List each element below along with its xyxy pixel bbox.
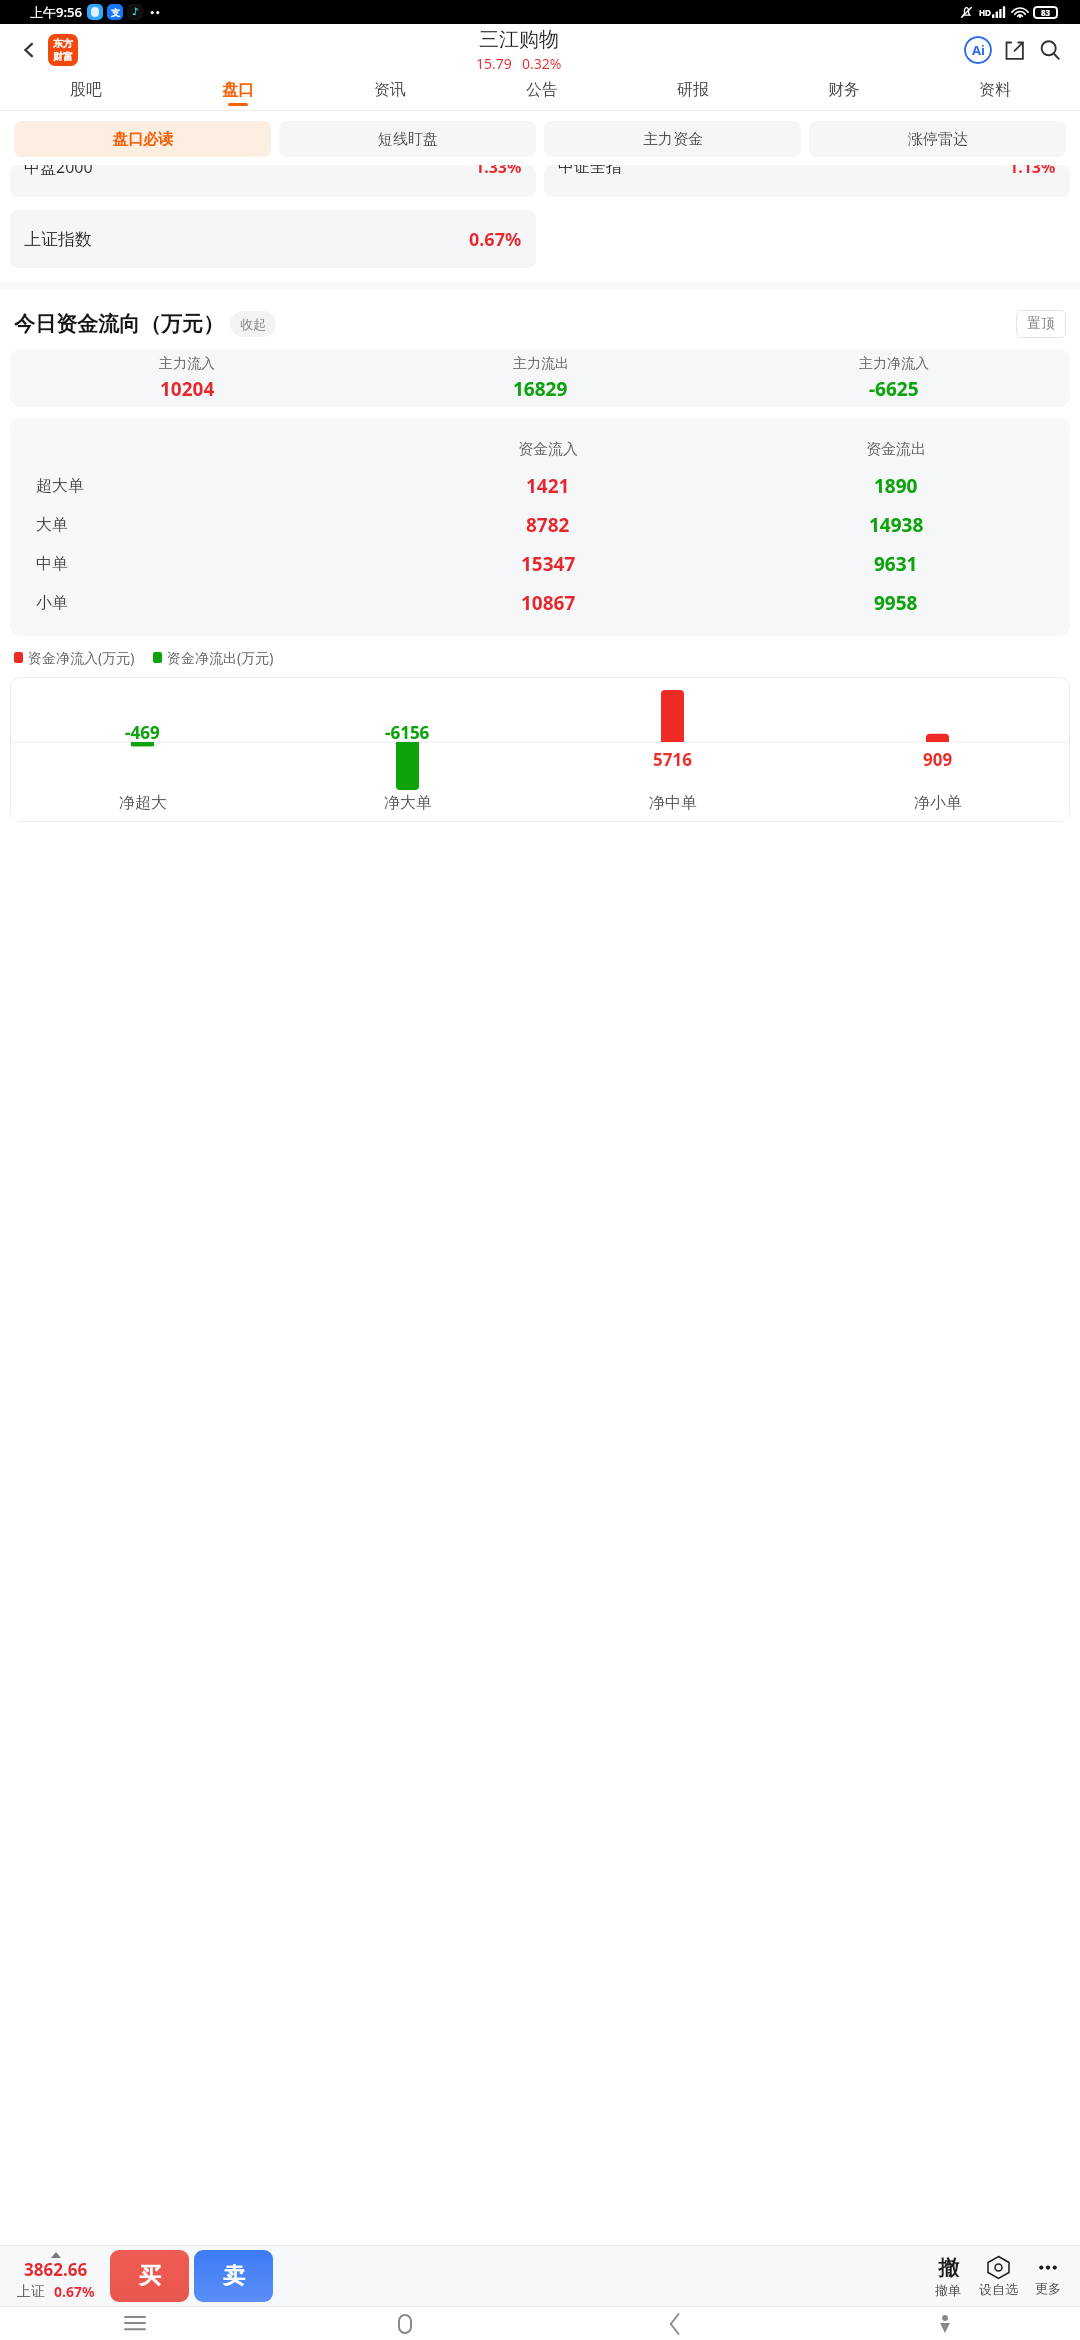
button[interactable]: 设自选 bbox=[972, 2255, 1024, 2297]
button[interactable]: 研报 bbox=[617, 76, 768, 110]
staticText: Ai bbox=[972, 41, 985, 59]
button[interactable]: 置顶 bbox=[1027, 310, 1055, 338]
staticText: 1890 bbox=[874, 473, 918, 499]
staticText: 5716 bbox=[653, 748, 692, 771]
button[interactable]: Search bbox=[1032, 32, 1068, 68]
staticText: 10867 bbox=[521, 590, 576, 616]
staticText: 0.32% bbox=[522, 54, 562, 73]
staticText: 大单 bbox=[36, 515, 68, 535]
staticText: 主力流入 bbox=[159, 355, 215, 373]
button[interactable]: 中盘2000 bbox=[10, 165, 536, 197]
staticText: 撤单 bbox=[935, 2282, 961, 2298]
staticText: -469 bbox=[125, 721, 160, 744]
button[interactable]: 主力资金 bbox=[544, 121, 801, 157]
staticText: 83 bbox=[1041, 7, 1051, 18]
staticText: 中盘2000 bbox=[24, 165, 93, 178]
staticText: 小单 bbox=[36, 593, 68, 613]
button[interactable]: 小单 bbox=[10, 583, 1070, 622]
staticText: 撤 bbox=[938, 2255, 959, 2281]
staticText: 卖 bbox=[223, 2262, 245, 2290]
staticText: 东方 bbox=[53, 37, 73, 50]
button[interactable]: 盘口必读 bbox=[14, 121, 271, 157]
button[interactable]: 买 bbox=[110, 2250, 189, 2302]
staticText: 中证全指 bbox=[558, 165, 622, 177]
button[interactable]: 卖 bbox=[194, 2250, 273, 2302]
staticText: -6156 bbox=[385, 721, 430, 744]
staticText: 超大单 bbox=[36, 476, 84, 496]
button[interactable]: 资料 bbox=[919, 76, 1070, 110]
button[interactable]: Back bbox=[12, 33, 46, 67]
staticText: 今日资金流向（万元） bbox=[14, 311, 224, 337]
staticText: 主力净流入 bbox=[859, 355, 929, 373]
staticText: 三江购物 bbox=[479, 27, 559, 52]
staticText: 更多 bbox=[1035, 2280, 1061, 2296]
staticText: 净中单 bbox=[649, 793, 697, 813]
staticText: 3862.66 bbox=[24, 2258, 88, 2281]
staticText: 置顶 bbox=[1027, 315, 1055, 333]
button[interactable]: Home bbox=[270, 2307, 540, 2340]
button[interactable]: 3862.66 bbox=[8, 2252, 104, 2301]
button[interactable]: Download bbox=[810, 2307, 1080, 2340]
staticText: 9631 bbox=[874, 551, 918, 577]
button[interactable]: Share bbox=[996, 32, 1032, 68]
button[interactable]: 盘口 bbox=[162, 76, 314, 110]
staticText: 1.33% bbox=[475, 165, 522, 178]
button[interactable]: 东方财富 bbox=[48, 34, 78, 66]
staticText: 财务 bbox=[828, 80, 860, 100]
staticText: HD bbox=[979, 7, 991, 18]
button[interactable]: 收起 bbox=[240, 311, 266, 337]
staticText: 净超大 bbox=[119, 793, 167, 813]
staticText: 短线盯盘 bbox=[378, 130, 438, 149]
button[interactable]: 财务 bbox=[768, 76, 919, 110]
staticText: 9958 bbox=[874, 590, 918, 616]
staticText: 涨停雷达 bbox=[908, 130, 968, 149]
button[interactable]: Back bbox=[540, 2307, 810, 2340]
button[interactable]: 短线盯盘 bbox=[279, 121, 536, 157]
staticText: 资讯 bbox=[374, 80, 406, 100]
staticText: 公告 bbox=[526, 80, 558, 100]
staticText: 909 bbox=[923, 748, 953, 771]
staticText: 0.67% bbox=[54, 2282, 95, 2301]
staticText: 资金净流入(万元) bbox=[28, 648, 135, 667]
staticText: 15.79 bbox=[476, 54, 512, 73]
staticText: 主力流出 bbox=[513, 355, 569, 373]
staticText: 盘口必读 bbox=[113, 130, 173, 149]
staticText: 研报 bbox=[677, 80, 709, 100]
button[interactable]: 撤 bbox=[924, 2255, 972, 2298]
staticText: 资金流出 bbox=[866, 440, 926, 459]
staticText: 设自选 bbox=[979, 2281, 1018, 2297]
staticText: 资金流入 bbox=[518, 440, 578, 459]
staticText: 14938 bbox=[869, 512, 924, 538]
staticText: 15347 bbox=[521, 551, 576, 577]
staticText: 16829 bbox=[513, 376, 568, 402]
button[interactable]: 更多 bbox=[1024, 2257, 1072, 2296]
button[interactable]: 中证全指 bbox=[544, 165, 1070, 197]
button[interactable]: 超大单 bbox=[10, 466, 1070, 505]
staticText: 支 bbox=[111, 7, 120, 18]
button[interactable]: 上证指数 bbox=[10, 210, 536, 268]
staticText: 上午9:56 bbox=[30, 3, 82, 21]
button[interactable]: 公告 bbox=[466, 76, 617, 110]
button[interactable]: 大单 bbox=[10, 505, 1070, 544]
staticText: 财富 bbox=[53, 50, 73, 63]
button[interactable]: AI bbox=[960, 32, 996, 68]
staticText: 收起 bbox=[240, 316, 266, 332]
staticText: 8782 bbox=[526, 512, 570, 538]
button[interactable]: 资讯 bbox=[314, 76, 466, 110]
staticText: 资料 bbox=[979, 80, 1011, 100]
staticText: 主力资金 bbox=[643, 130, 703, 149]
staticText: 上证 bbox=[17, 2283, 45, 2301]
button[interactable]: 涨停雷达 bbox=[809, 121, 1066, 157]
staticText: 中单 bbox=[36, 554, 68, 574]
button[interactable]: 股吧 bbox=[10, 76, 162, 110]
button[interactable]: Menu bbox=[0, 2307, 270, 2340]
staticText: 上证指数 bbox=[24, 229, 92, 250]
staticText: 净小单 bbox=[914, 793, 962, 813]
staticText: -6625 bbox=[869, 376, 919, 402]
staticText: 股吧 bbox=[70, 80, 102, 100]
staticText: 10204 bbox=[160, 376, 215, 402]
staticText: 1.13% bbox=[1009, 165, 1056, 178]
button[interactable]: 中单 bbox=[10, 544, 1070, 583]
staticText: 盘口 bbox=[222, 80, 254, 100]
staticText: 1421 bbox=[526, 473, 570, 499]
